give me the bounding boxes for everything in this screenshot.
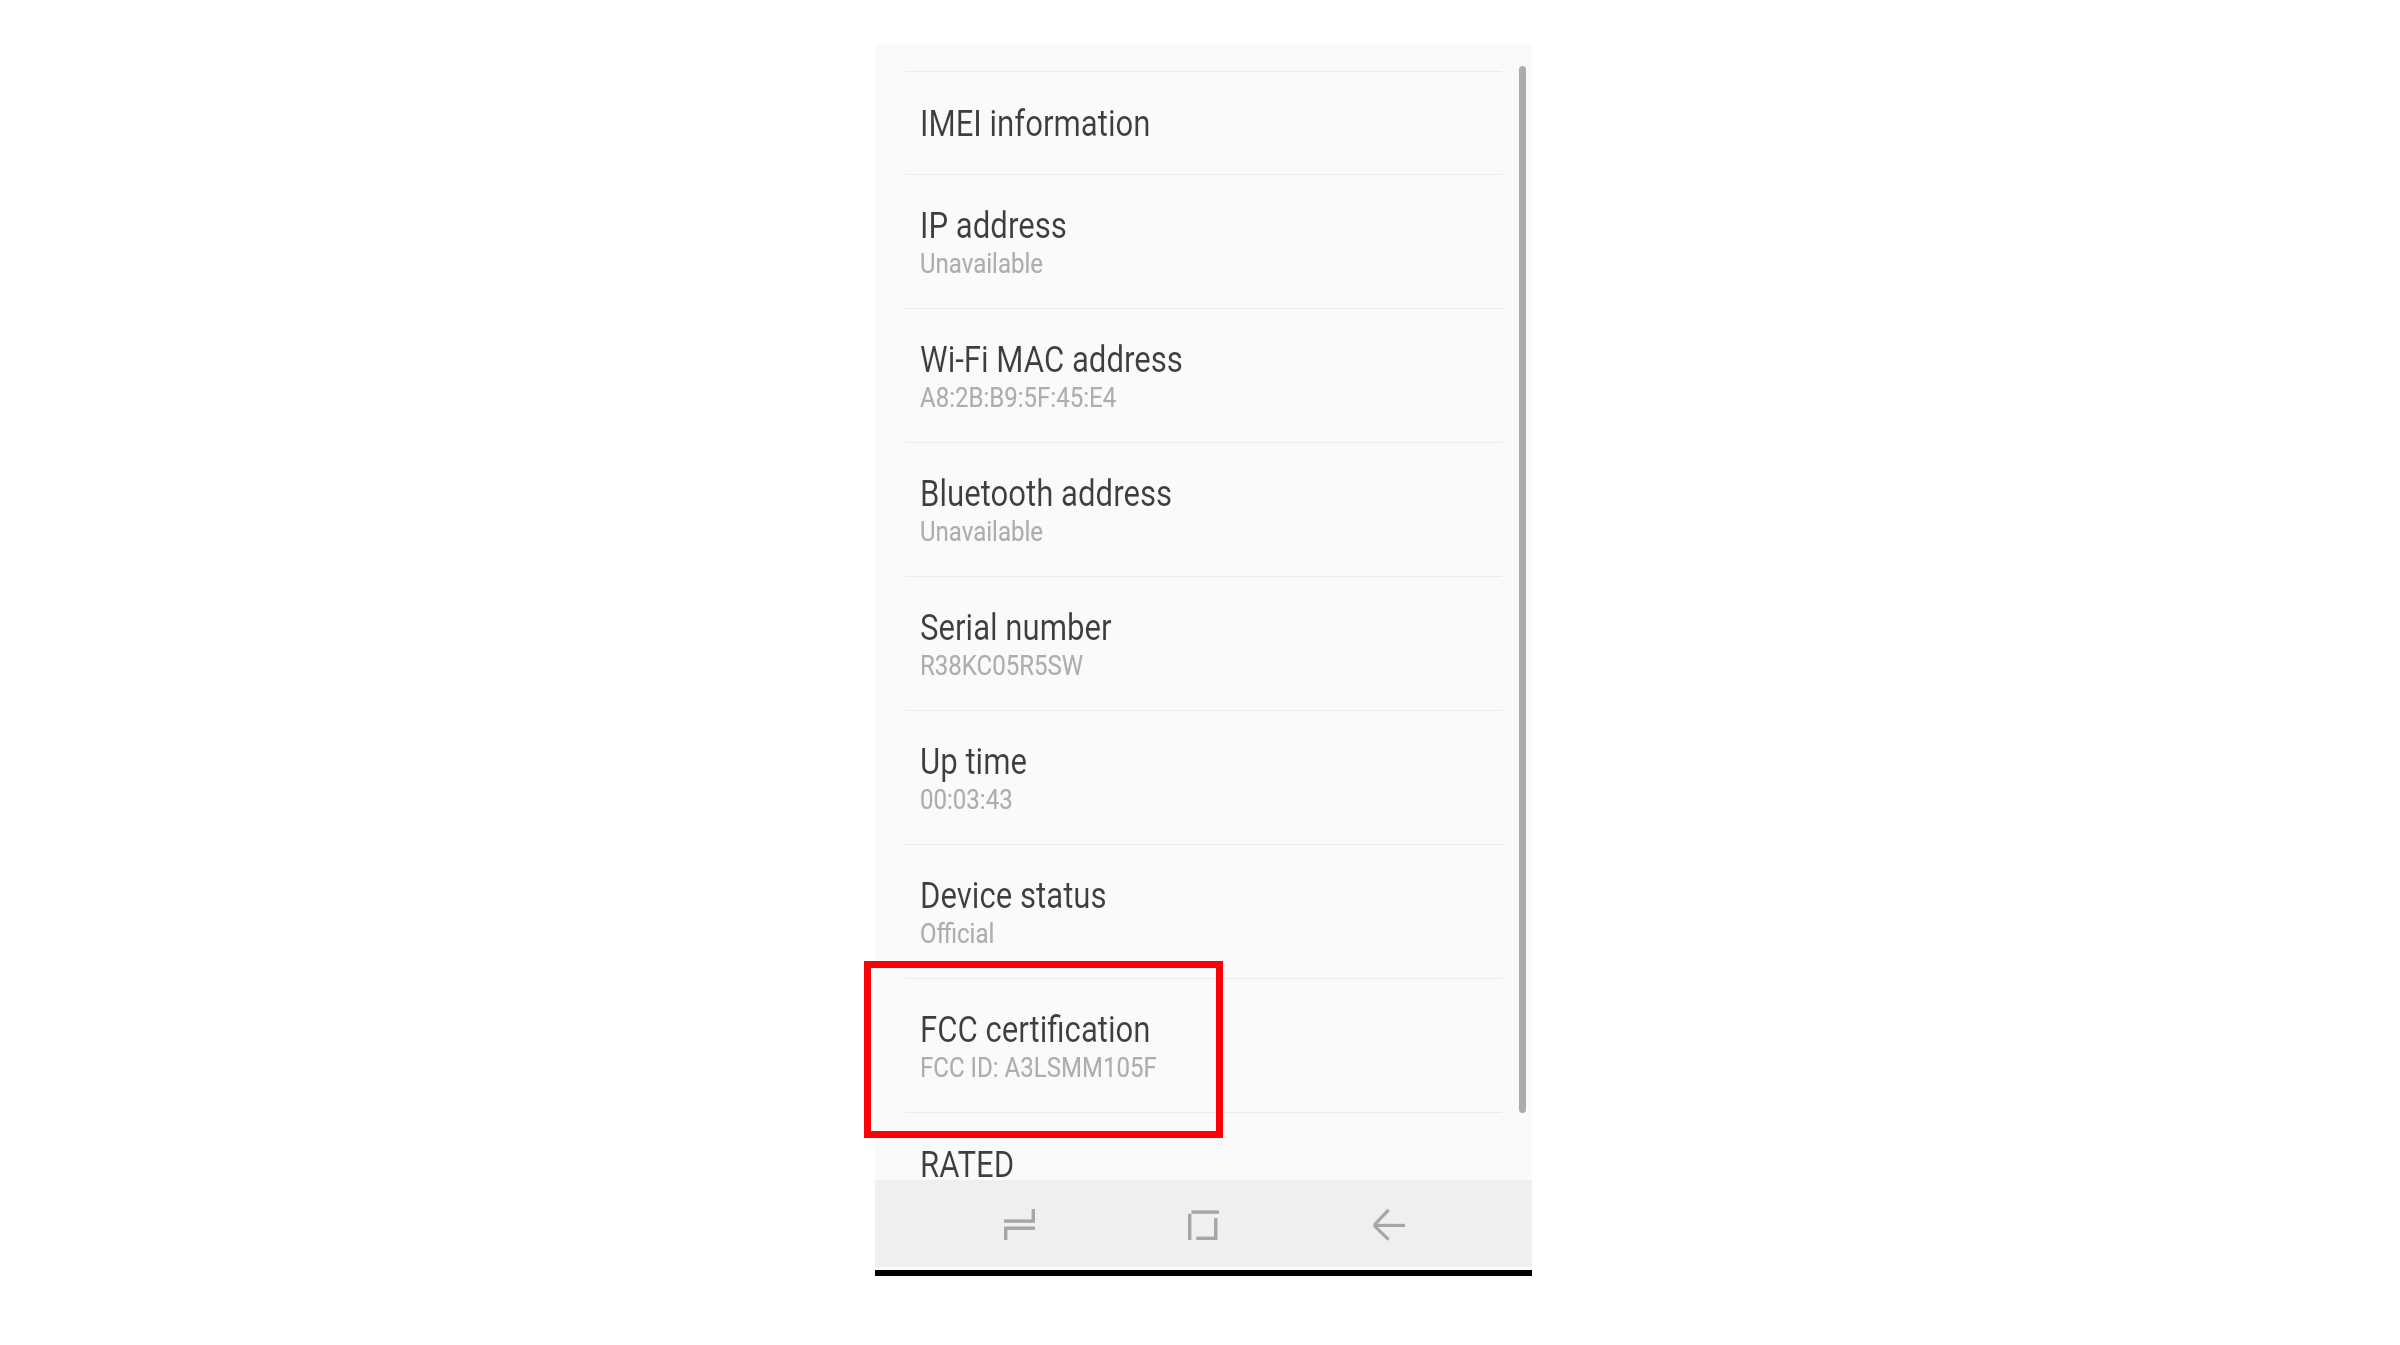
staticText: Up time <box>920 741 1027 783</box>
button[interactable]: IP address <box>875 174 1532 308</box>
staticText: RATED <box>920 1144 1014 1186</box>
button[interactable]: IMEI information <box>875 71 1532 174</box>
button[interactable]: Home <box>1094 1180 1313 1267</box>
button[interactable]: Up time <box>875 710 1532 844</box>
staticText: Unavailable <box>920 515 1044 548</box>
staticText: IMEI information <box>920 103 1151 145</box>
staticText: 00:03:43 <box>920 783 1013 816</box>
staticText: FCC ID: A3LSMM105F <box>920 1051 1157 1084</box>
button[interactable]: Bluetooth address <box>875 442 1532 576</box>
staticText: Unavailable <box>920 247 1044 280</box>
staticText: Serial number <box>920 607 1112 649</box>
staticText: R38KC05R5SW <box>920 649 1084 682</box>
staticText: IP address <box>920 205 1067 247</box>
button[interactable]: Recent apps <box>875 1180 1094 1267</box>
button[interactable]: FCC certification <box>875 978 1532 1112</box>
button[interactable]: RATED <box>875 1112 1532 1180</box>
staticText: A8:2B:B9:5F:45:E4 <box>920 381 1116 414</box>
staticText: FCC certification <box>920 1009 1151 1051</box>
staticText: Bluetooth address <box>920 473 1173 515</box>
staticText: Device status <box>920 875 1107 917</box>
button[interactable]: Device status <box>875 844 1532 978</box>
button[interactable]: Serial number <box>875 576 1532 710</box>
staticText: Wi-Fi MAC address <box>920 339 1183 381</box>
button[interactable]: Back <box>1313 1180 1532 1267</box>
button[interactable]: Wi-Fi MAC address <box>875 308 1532 442</box>
staticText: Official <box>920 917 995 950</box>
